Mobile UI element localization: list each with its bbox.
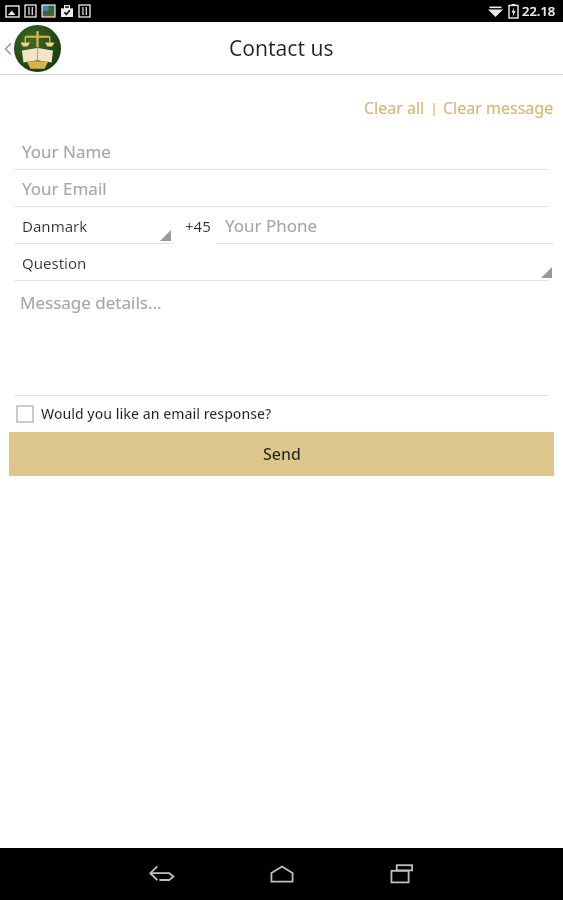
staticText: Message details... — [20, 291, 162, 314]
staticText: Would you like an email response? — [41, 404, 272, 423]
staticText: Send — [263, 443, 301, 465]
button[interactable]: Clear message — [441, 95, 556, 121]
staticText: +45 — [185, 216, 211, 236]
staticText: Danmark — [22, 216, 88, 236]
staticText: Your Email — [22, 177, 107, 200]
staticText: Clear all — [364, 97, 425, 119]
staticText: Contact us — [229, 34, 334, 63]
button[interactable]: Clear all — [362, 95, 427, 121]
button[interactable]: Send — [9, 432, 554, 476]
button[interactable]: Your Email — [0, 170, 563, 207]
button[interactable]: Home — [222, 848, 342, 900]
staticText: Clear message — [443, 97, 554, 119]
staticText: 22.18 — [522, 2, 556, 20]
button[interactable]: Your Phone — [216, 207, 563, 244]
button[interactable]: Question — [0, 244, 563, 281]
button[interactable]: Back — [0, 25, 65, 72]
staticText: Your Name — [22, 140, 111, 163]
button[interactable]: Back — [102, 848, 222, 900]
staticText: Question — [22, 253, 87, 273]
button[interactable]: Recent apps — [342, 848, 462, 900]
button[interactable]: Message details... — [0, 281, 563, 396]
button[interactable]: Danmark — [0, 207, 180, 244]
staticText: | — [427, 99, 441, 117]
button[interactable]: Your Name — [0, 133, 563, 170]
staticText: Your Phone — [225, 214, 318, 237]
button[interactable]: Would you like an email response? — [0, 401, 563, 426]
